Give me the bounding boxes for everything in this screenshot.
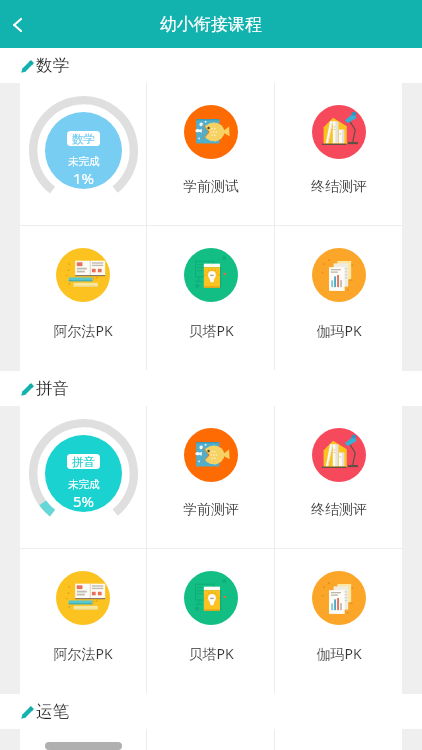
staticText: 拼音 bbox=[36, 378, 69, 399]
staticText: 幼小衔接课程 bbox=[160, 14, 262, 35]
button[interactable]: 贝塔PK bbox=[147, 549, 274, 693]
button[interactable]: 运笔 bbox=[20, 729, 146, 750]
staticText: 5% bbox=[73, 491, 95, 511]
staticText: 贝塔PK bbox=[188, 644, 234, 663]
button[interactable]: 终结测评 bbox=[275, 83, 402, 225]
button[interactable]: 伽玛PK bbox=[275, 549, 402, 693]
staticText: 伽玛PK bbox=[316, 644, 362, 663]
staticText: 终结测评 bbox=[311, 178, 367, 196]
staticText: 伽玛PK bbox=[316, 321, 362, 340]
staticText: 数学 bbox=[36, 55, 69, 76]
staticText: 学前测试 bbox=[183, 178, 239, 196]
staticText: 阿尔法PK bbox=[53, 321, 113, 340]
staticText: 1% bbox=[73, 168, 95, 188]
staticText: 未完成 bbox=[68, 478, 100, 491]
button[interactable]: 学前测试 bbox=[147, 83, 274, 225]
staticText: 未完成 bbox=[68, 155, 100, 168]
button[interactable]: 终结测评 bbox=[275, 406, 402, 548]
button[interactable]: 数学 bbox=[20, 83, 146, 225]
button[interactable]: 阿尔法PK bbox=[20, 226, 146, 370]
staticText: 贝塔PK bbox=[188, 321, 234, 340]
staticText: 运笔 bbox=[36, 701, 69, 722]
button[interactable]: 阿尔法PK bbox=[20, 549, 146, 693]
staticText: 数学 bbox=[72, 132, 95, 146]
button[interactable]: Back bbox=[0, 0, 40, 48]
button[interactable]: 贝塔PK bbox=[147, 226, 274, 370]
button[interactable]: 伽玛PK bbox=[275, 226, 402, 370]
staticText: 终结测评 bbox=[311, 501, 367, 519]
staticText: 拼音 bbox=[72, 455, 95, 469]
staticText: 学前测评 bbox=[183, 501, 239, 519]
button[interactable]: 拼音 bbox=[20, 406, 146, 548]
staticText: 阿尔法PK bbox=[53, 644, 113, 663]
button[interactable]: 学前测评 bbox=[147, 406, 274, 548]
